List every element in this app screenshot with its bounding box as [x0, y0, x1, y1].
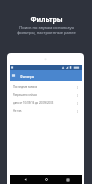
staticText: Разрешено сейчас [13, 93, 38, 97]
button[interactable]: Не так [10, 107, 82, 115]
staticText: Фильтры [30, 15, 63, 24]
staticText: дата от 10/09/16 до 20/09/2003 [13, 101, 54, 105]
other: More options [75, 101, 80, 106]
other: Menu [11, 73, 16, 78]
staticText: Поиск по звукам используя фильтры, настр… [17, 25, 76, 35]
button[interactable]: Menu [10, 70, 82, 81]
button[interactable]: Back [15, 175, 36, 184]
other: More options [75, 93, 80, 98]
button[interactable]: дата от 10/09/16 до 20/09/2003 [10, 99, 82, 107]
button[interactable]: Разрешено сейчас [10, 91, 82, 99]
other: More options [75, 85, 80, 90]
staticText: Не так [13, 109, 22, 113]
button[interactable]: Recent apps [57, 175, 78, 184]
button[interactable]: Последние записи [10, 83, 82, 91]
button[interactable]: Home [36, 175, 57, 184]
staticText: Фильтры [20, 74, 35, 78]
other: More options [75, 109, 80, 114]
staticText: Последние записи [13, 85, 38, 89]
